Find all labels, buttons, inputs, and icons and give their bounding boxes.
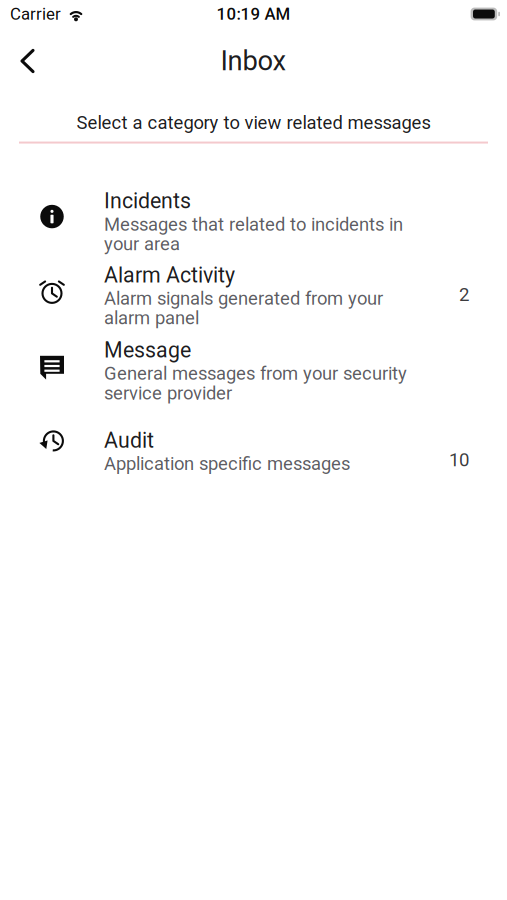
button[interactable]: Incidents	[0, 189, 507, 255]
staticText: Alarm Activity	[104, 263, 235, 288]
button[interactable]: Back	[0, 38, 56, 84]
staticText: General messages from your security serv…	[104, 363, 407, 404]
button[interactable]: Audit	[0, 428, 507, 474]
button[interactable]: Alarm Activity	[0, 263, 507, 329]
button[interactable]: Message	[0, 338, 507, 404]
staticText: Alarm signals generated from your alarm …	[104, 288, 383, 329]
staticText: 2	[459, 284, 469, 306]
staticText: Audit	[104, 428, 154, 453]
staticText: 10:19 AM	[216, 4, 290, 24]
staticText: Messages that related to incidents in yo…	[104, 214, 403, 255]
staticText: Application specific messages	[104, 453, 350, 474]
staticText: Select a category to view related messag…	[76, 112, 430, 134]
staticText: Incidents	[104, 189, 191, 214]
staticText: Inbox	[220, 45, 286, 77]
staticText: Carrier	[10, 4, 61, 24]
staticText: Message	[104, 338, 191, 363]
staticText: 10	[449, 449, 469, 471]
